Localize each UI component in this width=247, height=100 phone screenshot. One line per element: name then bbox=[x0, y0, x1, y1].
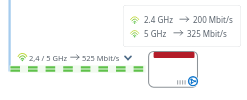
staticText: 2.4 GHz bbox=[144, 14, 173, 25]
staticText: 325 Mbit/s bbox=[187, 28, 227, 39]
staticText: 2,4 / 5 GHz bbox=[29, 53, 68, 63]
staticText: 200 Mbit/s bbox=[193, 14, 233, 25]
staticText: 5 GHz bbox=[144, 28, 167, 39]
button[interactable]: Expand details bbox=[122, 52, 134, 64]
staticText: 525 Mbit/s bbox=[82, 53, 120, 63]
button[interactable] bbox=[123, 5, 241, 47]
